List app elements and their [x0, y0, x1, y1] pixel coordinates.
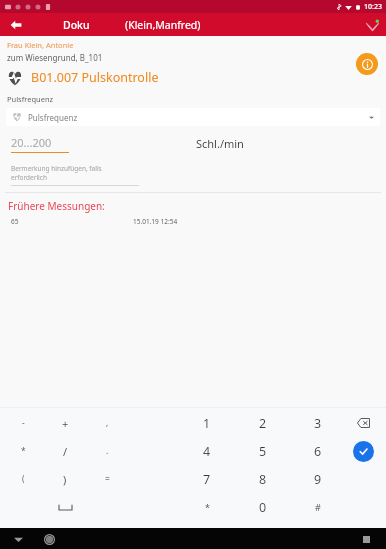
staticText: 7: [203, 471, 211, 488]
button[interactable]: Startbildschirm: [40, 530, 58, 548]
staticText: 8: [259, 471, 267, 488]
button[interactable]: Bestätigen: [353, 441, 374, 462]
staticText: 10:23: [364, 2, 382, 12]
staticText: *: [21, 445, 26, 457]
button[interactable]: Leerzeichen: [46, 494, 84, 520]
button[interactable]: Information: [356, 53, 378, 75]
staticText: Pulsfrequenz: [28, 112, 78, 123]
staticText: Schl./min: [196, 136, 244, 151]
staticText: 3: [314, 415, 322, 432]
button[interactable]: Pulsfrequenz: [6, 108, 380, 126]
staticText: 20...200: [11, 135, 52, 150]
staticText: 5: [259, 443, 267, 460]
button[interactable]: 65: [0, 217, 386, 226]
button[interactable]: 2: [244, 410, 282, 436]
staticText: Pulsfrequenz: [7, 94, 54, 104]
staticText: 65: [11, 217, 19, 226]
button[interactable]: ,: [88, 410, 126, 436]
staticText: Frühere Messungen:: [8, 199, 105, 213]
button[interactable]: +: [46, 410, 84, 436]
staticText: #: [315, 501, 321, 513]
button[interactable]: 1: [188, 410, 226, 436]
staticText: -: [22, 417, 25, 429]
button[interactable]: 5: [244, 438, 282, 464]
staticText: =: [105, 473, 110, 485]
button[interactable]: =: [88, 466, 126, 492]
button[interactable]: *: [188, 494, 226, 520]
button[interactable]: #: [299, 494, 337, 520]
button[interactable]: -: [4, 410, 42, 436]
staticText: 4: [203, 443, 211, 460]
button[interactable]: Übersicht: [357, 530, 375, 548]
staticText: .: [106, 445, 109, 457]
button[interactable]: Löschen: [344, 410, 382, 436]
staticText: 1: [203, 415, 211, 432]
button[interactable]: ): [46, 466, 84, 492]
staticText: B01.007 Pulskontrolle: [31, 69, 159, 86]
button[interactable]: 3: [299, 410, 337, 436]
button[interactable]: 6: [299, 438, 337, 464]
button[interactable]: Verbindung: [363, 16, 381, 34]
staticText: 2: [259, 415, 267, 432]
staticText: 0: [259, 499, 267, 516]
staticText: *: [205, 501, 210, 513]
staticText: zum Wiesengrund, B_101: [7, 52, 103, 63]
staticText: ): [63, 472, 67, 487]
staticText: (: [22, 473, 25, 485]
staticText: Doku: [63, 18, 90, 32]
button[interactable]: 7: [188, 466, 226, 492]
staticText: 15.01.19 12:54: [133, 217, 178, 226]
staticText: ,: [106, 417, 109, 429]
button[interactable]: Zurück: [7, 16, 25, 34]
staticText: Bermerkung hinzufügen, falls erforderlic…: [11, 164, 139, 182]
staticText: 6: [314, 443, 322, 460]
button[interactable]: 0: [244, 494, 282, 520]
staticText: (Klein,Manfred): [125, 18, 201, 32]
staticText: +: [62, 416, 69, 431]
button[interactable]: 9: [299, 466, 337, 492]
staticText: Frau Klein, Antonie: [7, 40, 74, 50]
button[interactable]: Bermerkung hinzufügen, falls erforderlic…: [11, 164, 139, 186]
button[interactable]: Zurück: [9, 530, 27, 548]
button[interactable]: 20...200: [11, 135, 69, 153]
button[interactable]: /: [46, 438, 84, 464]
staticText: /: [63, 444, 68, 459]
button[interactable]: 8: [244, 466, 282, 492]
button[interactable]: *: [4, 438, 42, 464]
button[interactable]: 4: [188, 438, 226, 464]
button[interactable]: (: [4, 466, 42, 492]
staticText: 9: [314, 471, 322, 488]
